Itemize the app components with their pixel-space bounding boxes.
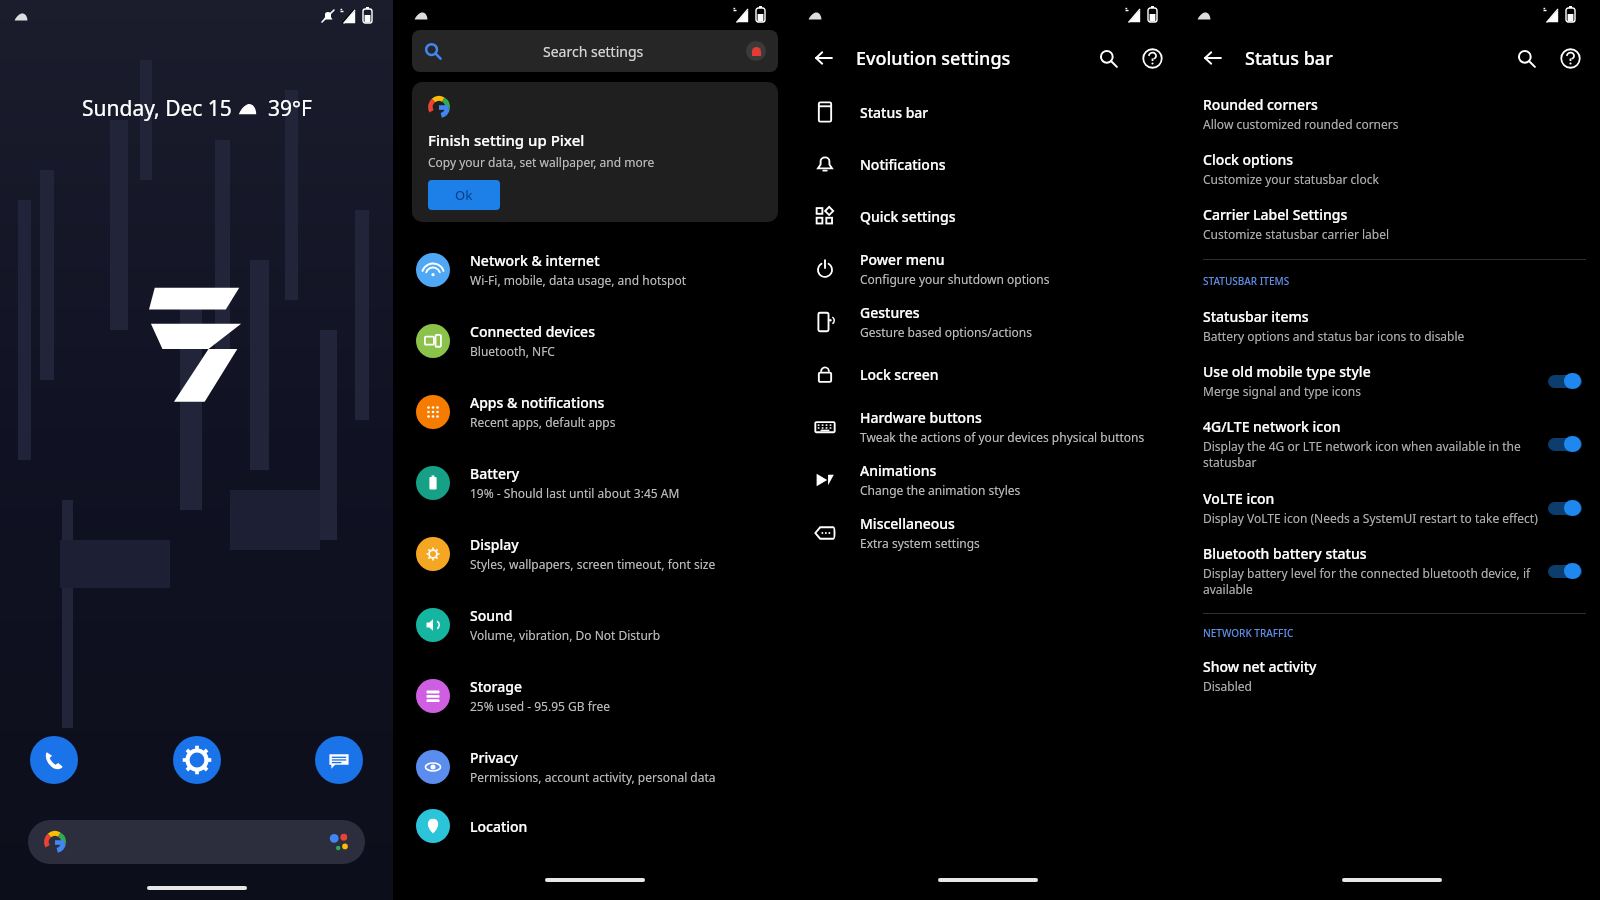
staticText: Privacy bbox=[470, 748, 518, 767]
button[interactable]: Network & internet bbox=[400, 234, 790, 305]
staticText: Status bar bbox=[1245, 46, 1333, 71]
staticText: Search settings bbox=[543, 42, 644, 61]
staticText: Statusbar items bbox=[1203, 307, 1309, 326]
button[interactable]: Show net activity bbox=[1203, 648, 1586, 703]
button[interactable]: Finish setting up Pixel bbox=[412, 82, 778, 222]
staticText: Disabled bbox=[1203, 678, 1252, 694]
staticText: Use old mobile type style bbox=[1203, 362, 1371, 381]
staticText: Connected devices bbox=[470, 322, 595, 341]
button[interactable]: Search bbox=[1088, 38, 1128, 78]
staticText: Volume, vibration, Do Not Disturb bbox=[470, 627, 661, 643]
staticText: Quick settings bbox=[860, 207, 956, 226]
staticText: STATUSBAR ITEMS bbox=[1203, 274, 1290, 288]
button[interactable]: Ok bbox=[428, 180, 500, 210]
staticText: Battery bbox=[470, 464, 520, 483]
staticText: Animations bbox=[860, 461, 937, 480]
staticText: Clock options bbox=[1203, 150, 1294, 169]
button[interactable]: Messages bbox=[315, 736, 363, 784]
staticText: Display bbox=[470, 535, 519, 554]
button[interactable]: Gestures bbox=[794, 295, 1182, 348]
button[interactable]: Back bbox=[1193, 38, 1233, 78]
button[interactable]: Notifications bbox=[794, 138, 1182, 190]
button[interactable]: VoLTE icon bbox=[1203, 480, 1586, 535]
button[interactable]: Search settings bbox=[412, 30, 778, 72]
button[interactable]: Settings bbox=[173, 736, 221, 784]
staticText: Wi-Fi, mobile, data usage, and hotspot bbox=[470, 272, 686, 288]
button[interactable]: Status bar bbox=[794, 86, 1182, 138]
button[interactable]: Carrier Label Settings bbox=[1203, 196, 1586, 251]
staticText: Network & internet bbox=[470, 251, 600, 270]
staticText: 25% used - 95.95 GB free bbox=[470, 698, 611, 714]
staticText: Sound bbox=[470, 606, 513, 625]
button[interactable]: Location bbox=[400, 802, 790, 850]
staticText: VoLTE icon bbox=[1203, 489, 1275, 508]
button[interactable]: Quick settings bbox=[794, 190, 1182, 242]
staticText: Allow customized rounded corners bbox=[1203, 116, 1399, 132]
staticText: 19% - Should last until about 3:45 AM bbox=[470, 485, 680, 501]
button[interactable]: Storage bbox=[400, 660, 790, 731]
staticText: Styles, wallpapers, screen timeout, font… bbox=[470, 556, 716, 572]
button[interactable]: Search bbox=[1506, 38, 1546, 78]
button[interactable]: Battery bbox=[400, 447, 790, 518]
staticText: Extra system settings bbox=[860, 535, 980, 551]
staticText: Sunday, Dec 15 bbox=[82, 94, 238, 123]
staticText: Location bbox=[470, 817, 528, 836]
button[interactable]: Help bbox=[1550, 38, 1590, 78]
staticText: Ok bbox=[455, 186, 473, 204]
button[interactable]: Clock options bbox=[1203, 141, 1586, 196]
staticText: Customize statusbar carrier label bbox=[1203, 226, 1390, 242]
staticText: Battery options and status bar icons to … bbox=[1203, 328, 1465, 344]
staticText: Lock screen bbox=[860, 365, 939, 384]
staticText: Show net activity bbox=[1203, 657, 1317, 676]
button[interactable]: Rounded corners bbox=[1203, 86, 1586, 141]
staticText: Merge signal and type icons bbox=[1203, 383, 1361, 399]
button[interactable]: Power menu bbox=[794, 242, 1182, 295]
staticText: Storage bbox=[470, 677, 522, 696]
staticText: Copy your data, set wallpaper, and more bbox=[428, 154, 655, 170]
button[interactable]: Phone bbox=[30, 736, 78, 784]
staticText: Display battery level for the connected … bbox=[1203, 565, 1538, 598]
staticText: Status bar bbox=[860, 103, 929, 122]
staticText: Change the animation styles bbox=[860, 482, 1021, 498]
button[interactable]: Statusbar items bbox=[1203, 298, 1586, 353]
staticText: Bluetooth, NFC bbox=[470, 343, 555, 359]
button[interactable] bbox=[28, 820, 365, 864]
staticText: Permissions, account activity, personal … bbox=[470, 769, 716, 785]
staticText: Carrier Label Settings bbox=[1203, 205, 1348, 224]
staticText: Apps & notifications bbox=[470, 393, 605, 412]
staticText: Rounded corners bbox=[1203, 95, 1318, 114]
button[interactable]: Lock screen bbox=[794, 348, 1182, 400]
button[interactable]: Apps & notifications bbox=[400, 376, 790, 447]
button[interactable]: Connected devices bbox=[400, 305, 790, 376]
staticText: NETWORK TRAFFIC bbox=[1203, 626, 1294, 640]
staticText: 39°F bbox=[257, 94, 312, 123]
staticText: Gesture based options/actions bbox=[860, 324, 1033, 340]
staticText: Finish setting up Pixel bbox=[428, 130, 585, 150]
button[interactable]: 4G/LTE network icon bbox=[1203, 408, 1586, 480]
button[interactable]: Sound bbox=[400, 589, 790, 660]
staticText: Bluetooth battery status bbox=[1203, 544, 1367, 563]
button[interactable]: Privacy bbox=[400, 731, 790, 802]
staticText: Hardware buttons bbox=[860, 408, 982, 427]
button[interactable]: Animations bbox=[794, 453, 1182, 506]
button[interactable]: Miscellaneous bbox=[794, 506, 1182, 559]
staticText: Configure your shutdown options bbox=[860, 271, 1050, 287]
button[interactable]: Display bbox=[400, 518, 790, 589]
staticText: Tweak the actions of your devices physic… bbox=[860, 429, 1145, 445]
staticText: Evolution settings bbox=[856, 46, 1011, 71]
staticText: Customize your statusbar clock bbox=[1203, 171, 1379, 187]
staticText: 4G/LTE network icon bbox=[1203, 417, 1341, 436]
button[interactable]: Use old mobile type style bbox=[1203, 353, 1586, 408]
button[interactable]: Bluetooth battery status bbox=[1203, 535, 1586, 607]
staticText: Miscellaneous bbox=[860, 514, 955, 533]
button[interactable]: Back bbox=[804, 38, 844, 78]
button[interactable]: Help bbox=[1132, 38, 1172, 78]
staticText: Notifications bbox=[860, 155, 946, 174]
staticText: Display the 4G or LTE network icon when … bbox=[1203, 438, 1538, 471]
staticText: Display VoLTE icon (Needs a SystemUI res… bbox=[1203, 510, 1538, 526]
button[interactable]: Hardware buttons bbox=[794, 400, 1182, 453]
staticText: Recent apps, default apps bbox=[470, 414, 616, 430]
staticText: Power menu bbox=[860, 250, 945, 269]
staticText: Gestures bbox=[860, 303, 920, 322]
